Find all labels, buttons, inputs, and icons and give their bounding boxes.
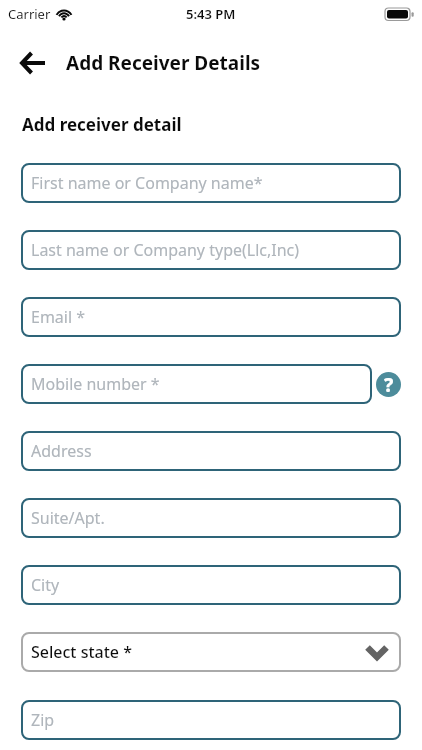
button[interactable]: Mobile number * <box>21 364 372 404</box>
staticText: Select state * <box>31 641 132 663</box>
staticText: Add receiver detail <box>22 113 182 136</box>
staticText: Mobile number * <box>31 373 160 395</box>
button[interactable] <box>20 52 46 74</box>
staticText: Last name or Company type(Llc,Inc) <box>31 239 300 261</box>
staticText: 5:43 PM <box>186 5 236 23</box>
button[interactable]: ? <box>376 372 401 397</box>
staticText: Carrier <box>8 5 51 23</box>
button[interactable]: Suite/Apt. <box>21 498 401 538</box>
staticText: Zip <box>31 709 55 731</box>
button[interactable]: Address <box>21 431 401 471</box>
button[interactable]: Last name or Company type(Llc,Inc) <box>21 230 401 270</box>
staticText: ? <box>384 372 394 397</box>
staticText: First name or Company name* <box>31 172 263 194</box>
staticText: Address <box>31 440 92 462</box>
button[interactable]: First name or Company name* <box>21 163 401 203</box>
button[interactable]: Zip <box>21 700 401 740</box>
button[interactable]: Select state * <box>21 632 401 672</box>
button[interactable]: City <box>21 565 401 605</box>
staticText: Email * <box>31 306 86 328</box>
staticText: Suite/Apt. <box>31 507 105 529</box>
staticText: City <box>31 574 60 596</box>
staticText: Add Receiver Details <box>66 50 261 76</box>
button[interactable]: Email * <box>21 297 401 337</box>
